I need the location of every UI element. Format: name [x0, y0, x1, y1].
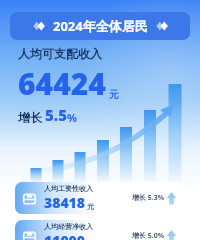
other: Wallet: [21, 190, 38, 207]
staticText: 元: [87, 202, 94, 211]
staticText: 元: [109, 88, 119, 101]
staticText: %: [67, 110, 77, 125]
staticText: 人均工资性收入: [44, 184, 93, 193]
staticText: 38418: [44, 193, 86, 212]
staticText: 64424: [18, 63, 106, 104]
staticText: 2024年全体居民: [53, 17, 148, 35]
staticText: 增长 5.0%: [131, 231, 164, 240]
other: Wallet: [21, 228, 38, 240]
button[interactable]: 2024年全体居民: [10, 12, 190, 40]
staticText: 增长: [18, 110, 42, 125]
button[interactable]: Wallet: [15, 182, 185, 214]
staticText: 11000: [44, 231, 86, 240]
staticText: 5.5: [45, 105, 67, 125]
staticText: 人均可支配收入: [18, 46, 102, 61]
button[interactable]: Wallet: [15, 220, 185, 240]
staticText: 增长 5.3%: [131, 193, 164, 203]
staticText: 人均经营净收入: [44, 222, 93, 231]
